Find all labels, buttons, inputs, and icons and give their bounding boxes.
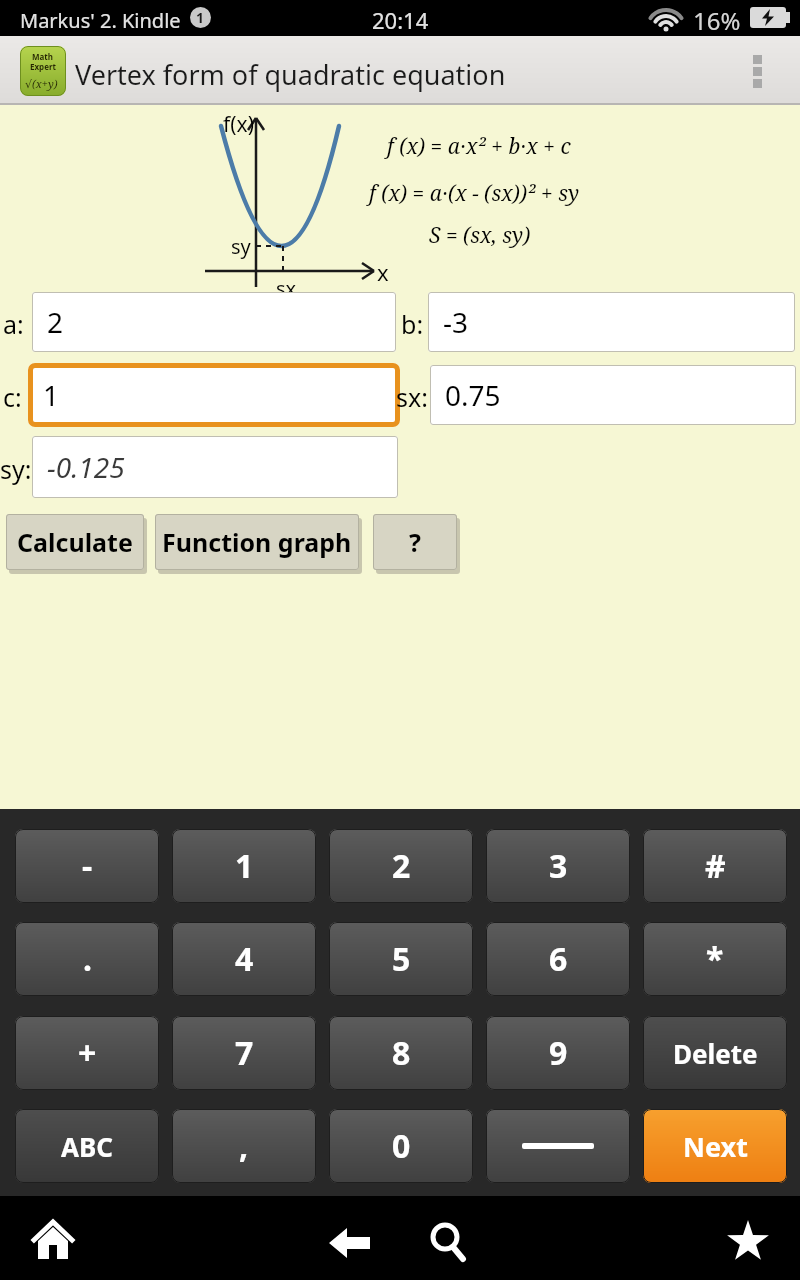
button[interactable]: 6 (486, 922, 630, 996)
button[interactable]: . (15, 922, 159, 996)
staticText: ? (409, 525, 421, 559)
staticText: 1 (196, 8, 205, 27)
staticText: S = (sx, sy) (429, 221, 531, 250)
staticText: , (239, 1124, 249, 1168)
staticText: c: (3, 380, 22, 414)
button[interactable] (25, 1219, 81, 1271)
button[interactable]: 1 (172, 829, 316, 903)
button[interactable]: 0.75 (430, 365, 796, 425)
staticText: # (705, 844, 726, 888)
button[interactable]: Delete (643, 1016, 787, 1090)
staticText: 1 (235, 844, 254, 888)
staticText: + (78, 1031, 97, 1075)
button[interactable]: 1 (28, 363, 400, 427)
staticText: sy (231, 233, 251, 260)
staticText: 3 (549, 844, 568, 888)
button[interactable]: -3 (428, 292, 795, 352)
staticText: 4 (235, 937, 254, 981)
button[interactable]: 8 (329, 1016, 473, 1090)
staticText: √(x+y) (25, 76, 58, 91)
button[interactable]: * (643, 922, 787, 996)
staticText: * (706, 937, 724, 981)
staticText: a: (3, 307, 24, 341)
staticText: Next (683, 1128, 748, 1165)
staticText: f (x) = a·x² + b·x + c (387, 132, 571, 161)
button[interactable] (423, 1217, 473, 1269)
button[interactable]: + (15, 1016, 159, 1090)
button[interactable]: , (172, 1109, 316, 1183)
staticText: b: (401, 307, 424, 341)
button[interactable] (486, 1109, 630, 1183)
staticText: 0.75 (445, 376, 501, 414)
staticText: . (83, 937, 92, 981)
staticText: 16% (693, 4, 741, 37)
button[interactable]: ? (373, 514, 457, 570)
button[interactable]: - (15, 829, 159, 903)
button[interactable] (325, 1228, 377, 1272)
button[interactable]: 2 (32, 292, 396, 352)
staticText: 8 (392, 1031, 411, 1075)
button[interactable]: 7 (172, 1016, 316, 1090)
button[interactable]: Calculate (6, 514, 144, 570)
staticText: 5 (392, 937, 411, 981)
button[interactable]: 3 (486, 829, 630, 903)
staticText: f(x) (223, 110, 254, 139)
staticText: 20:14 (372, 5, 429, 35)
button[interactable]: 0 (329, 1109, 473, 1183)
staticText: ABC (61, 1129, 113, 1164)
staticText: sx (276, 275, 297, 302)
staticText: 1 (43, 376, 60, 414)
staticText: Calculate (17, 525, 133, 559)
staticText: sx: (396, 380, 428, 414)
staticText: Vertex form of quadratic equation (75, 56, 506, 93)
staticText: Math (32, 51, 54, 62)
staticText: -3 (443, 303, 469, 341)
staticText: Expert (30, 61, 56, 72)
staticText: Markus' 2. Kindle (20, 7, 181, 34)
staticText: x (377, 257, 389, 287)
button[interactable]: # (643, 829, 787, 903)
button[interactable]: 5 (329, 922, 473, 996)
staticText: 6 (549, 937, 568, 981)
button[interactable]: 2 (329, 829, 473, 903)
staticText: 7 (235, 1031, 254, 1075)
staticText: Function graph (162, 525, 352, 559)
staticText: Delete (673, 1036, 758, 1071)
staticText: sy: (0, 452, 32, 486)
staticText: -0.125 (47, 448, 125, 486)
staticText: 9 (549, 1031, 568, 1075)
button[interactable] (746, 48, 770, 94)
button[interactable]: Function graph (155, 514, 359, 570)
button[interactable] (724, 1219, 772, 1267)
staticText: 2 (392, 844, 411, 888)
staticText: 0 (392, 1124, 411, 1168)
staticText: 2 (47, 303, 64, 341)
button[interactable]: 9 (486, 1016, 630, 1090)
staticText: f (x) = a·(x − (sx))² + sy (369, 179, 580, 208)
button[interactable]: 4 (172, 922, 316, 996)
button[interactable]: Next (643, 1109, 787, 1183)
staticText: - (82, 844, 93, 888)
button[interactable]: -0.125 (32, 436, 398, 498)
button[interactable]: ABC (15, 1109, 159, 1183)
